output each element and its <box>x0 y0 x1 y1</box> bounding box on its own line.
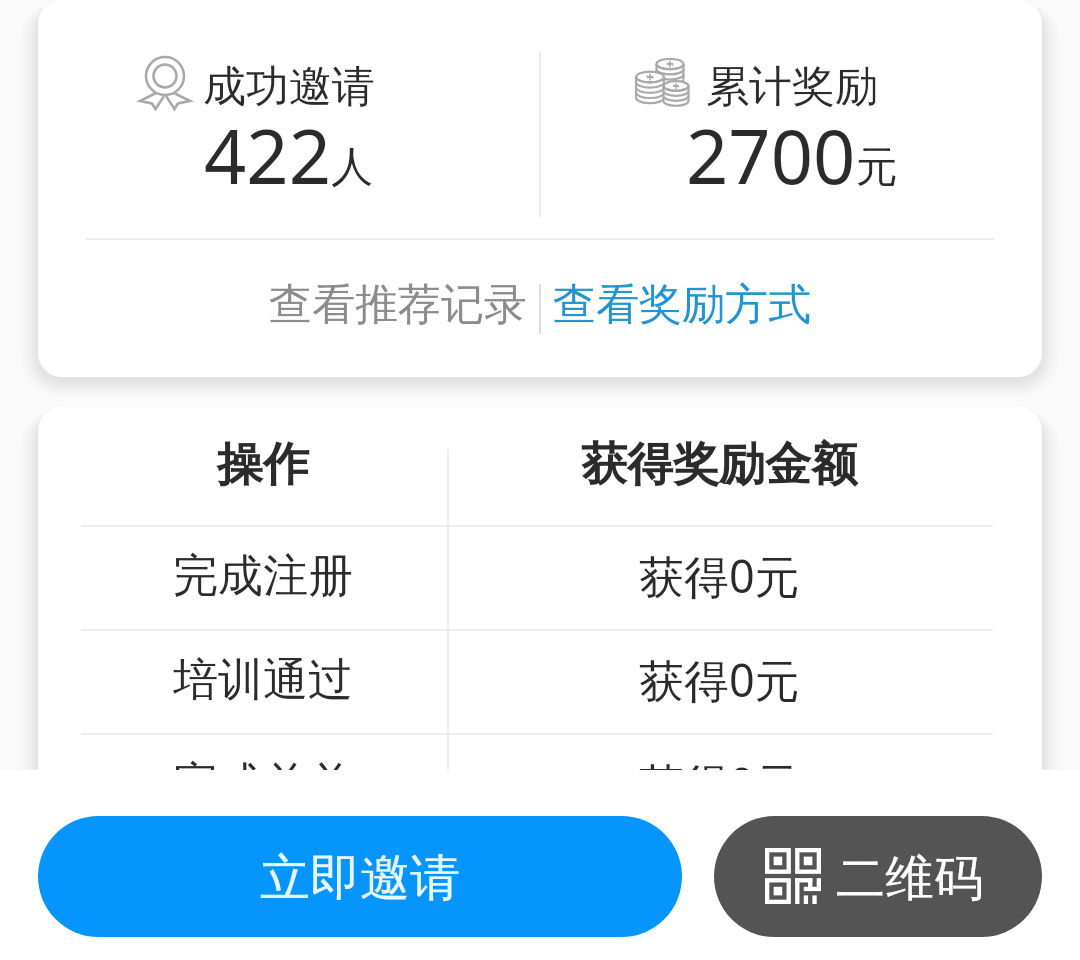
staticText: 立即邀请 <box>260 847 460 910</box>
staticText: 完成注册 <box>173 548 353 605</box>
button[interactable]: 查看推荐记录 <box>257 268 539 350</box>
button[interactable]: 查看奖励方式 <box>541 268 823 350</box>
button[interactable]: QR code <box>714 816 1042 937</box>
staticText: 获得奖励金额 <box>581 436 857 494</box>
staticText: 培训通过 <box>173 652 353 709</box>
staticText: 获得0元 <box>639 545 800 606</box>
other: QR code <box>765 848 821 905</box>
button[interactable]: 培训通过 <box>38 631 1042 733</box>
staticText: 累计奖励 <box>706 60 878 114</box>
staticText: 人 <box>331 141 373 194</box>
button[interactable]: 完成首单 <box>38 735 1042 837</box>
button[interactable]: 完成注册 <box>38 527 1042 629</box>
staticText: 二维码 <box>836 848 983 910</box>
staticText: 422 <box>204 105 331 206</box>
staticText: 成功邀请 <box>203 60 375 114</box>
staticText: 查看奖励方式 <box>553 278 811 332</box>
button[interactable]: 立即邀请 <box>38 816 682 937</box>
staticText: 2700 <box>686 105 856 206</box>
staticText: 获得0元 <box>639 649 800 710</box>
staticText: 元 <box>856 141 898 194</box>
staticText: 完成首单 <box>173 756 353 813</box>
staticText: 获得0元 <box>639 753 800 814</box>
staticText: 操作 <box>217 436 309 494</box>
staticText: 查看推荐记录 <box>269 278 527 332</box>
